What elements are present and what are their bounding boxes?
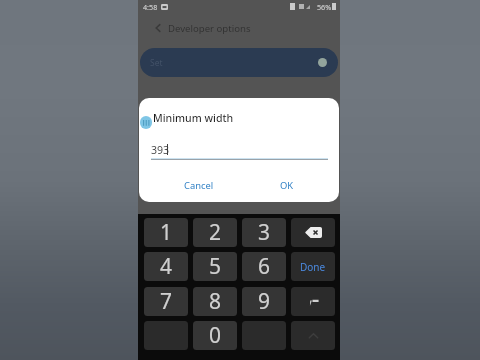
other: Delete: [305, 227, 322, 238]
staticText: 9: [258, 287, 271, 316]
staticText: Done: [300, 260, 326, 274]
staticText: 7: [160, 287, 173, 316]
staticText: 5: [209, 252, 222, 281]
button[interactable]: 8: [193, 287, 237, 316]
other: More symbols: [308, 332, 319, 340]
button[interactable]: 0: [193, 321, 237, 350]
staticText: Minimum width: [153, 111, 234, 125]
button[interactable]: 6: [242, 252, 286, 281]
button[interactable]: 3: [242, 218, 286, 247]
button[interactable]: 4: [144, 252, 188, 281]
staticText: 6: [258, 252, 271, 281]
staticText: 4: [160, 252, 173, 281]
staticText: 8: [209, 287, 222, 316]
staticText: 56%: [317, 2, 332, 12]
button[interactable]: 2: [193, 218, 237, 247]
staticText: 4:58: [143, 2, 158, 12]
button[interactable]: Delete: [291, 218, 335, 247]
button[interactable]: 1: [144, 218, 188, 247]
button[interactable]: OK: [273, 175, 301, 196]
staticText: Developer options: [168, 22, 251, 35]
staticText: 0: [209, 321, 222, 350]
staticText: 2: [209, 218, 222, 247]
staticText: 393: [151, 143, 170, 157]
button[interactable]: Comma and dash: [291, 287, 335, 316]
button[interactable]: 9: [242, 287, 286, 316]
button[interactable]: Done: [291, 252, 335, 281]
staticText: 3: [258, 218, 271, 247]
button[interactable]: 5: [193, 252, 237, 281]
button[interactable]: Back: [146, 16, 170, 40]
staticText: Set: [150, 57, 163, 69]
other: Comma and dash: [306, 295, 320, 309]
button[interactable]: 7: [144, 287, 188, 316]
button[interactable]: Search settings: [140, 48, 338, 77]
staticText: OK: [280, 179, 294, 192]
staticText: Cancel: [184, 179, 214, 192]
button[interactable]: Cancel: [177, 175, 221, 196]
staticText: 1: [160, 218, 173, 247]
